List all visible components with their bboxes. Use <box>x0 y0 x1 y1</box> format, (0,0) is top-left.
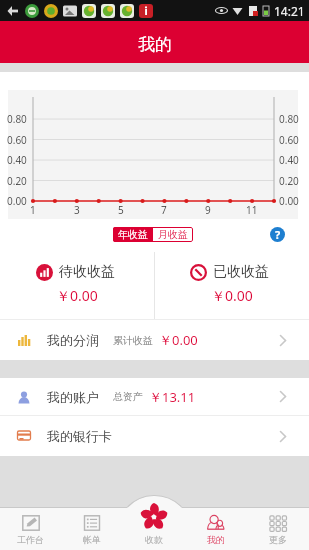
staticText: 已收收益 <box>213 263 269 281</box>
button[interactable]: 待收收益 <box>0 249 154 319</box>
button[interactable]: 我的分润 <box>0 320 309 360</box>
staticText: 总资产 <box>113 390 143 403</box>
staticText: 11 <box>246 203 258 217</box>
button[interactable]: 已收收益 <box>154 249 309 319</box>
staticText: 9 <box>205 203 211 217</box>
staticText: 0.60 <box>279 133 299 147</box>
staticText: 0.80 <box>7 112 27 126</box>
staticText: ? <box>275 227 281 242</box>
staticText: 0.60 <box>7 133 27 147</box>
staticText: 收款 <box>145 534 163 545</box>
staticText: 我的银行卡 <box>47 428 112 444</box>
button[interactable]: 年收益 <box>113 227 153 242</box>
button[interactable]: 月收益 <box>153 227 193 242</box>
staticText: 年收益 <box>118 228 148 241</box>
staticText: 累计收益 <box>113 334 153 347</box>
button[interactable]: 我的 <box>185 496 247 550</box>
staticText: ￥13.11 <box>149 388 196 406</box>
staticText: 7 <box>161 203 167 217</box>
staticText: 我的 <box>138 34 172 55</box>
staticText: 0.00 <box>7 194 27 208</box>
staticText: 我的 <box>207 534 225 545</box>
button[interactable]: Help <box>270 227 285 242</box>
staticText: 我的账户 <box>47 389 99 405</box>
staticText: 1 <box>30 203 36 217</box>
staticText: 月收益 <box>158 228 188 241</box>
staticText: 更多 <box>269 534 287 545</box>
staticText: 5 <box>118 203 124 217</box>
button[interactable]: 更多 <box>247 496 309 550</box>
staticText: 我的分润 <box>47 332 99 348</box>
staticText: 帐单 <box>83 534 101 545</box>
staticText: 0.00 <box>279 194 299 208</box>
staticText: 3 <box>74 203 80 217</box>
staticText: ￥0.00 <box>211 286 253 305</box>
button[interactable]: 帐单 <box>61 496 123 550</box>
button[interactable]: 工作台 <box>0 496 61 550</box>
staticText: 14:21 <box>274 3 305 19</box>
staticText: 待收收益 <box>59 263 115 281</box>
button[interactable]: 收款 <box>123 496 185 550</box>
staticText: 0.40 <box>7 153 27 167</box>
staticText: ￥0.00 <box>56 286 98 305</box>
staticText: 0.20 <box>7 174 27 188</box>
button[interactable]: 我的账户 <box>0 378 309 415</box>
staticText: ￥0.00 <box>159 331 198 349</box>
staticText: 工作台 <box>17 534 44 545</box>
button[interactable]: 我的银行卡 <box>0 416 309 456</box>
staticText: 0.80 <box>279 112 299 126</box>
staticText: 0.40 <box>279 153 299 167</box>
staticText: 0.20 <box>279 174 299 188</box>
